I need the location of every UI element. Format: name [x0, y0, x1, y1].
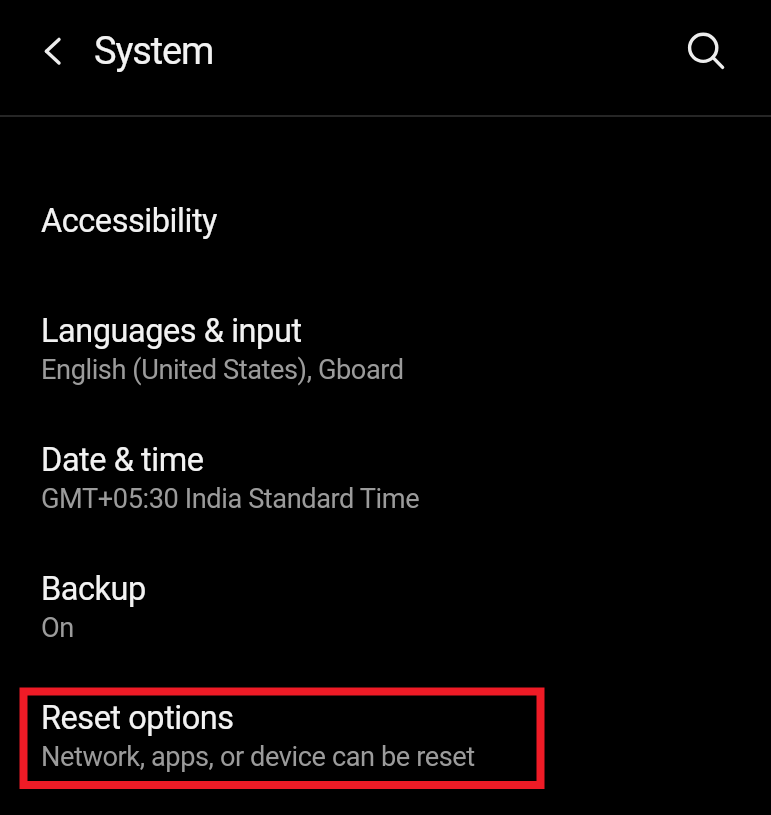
button[interactable]: Date & time	[0, 412, 771, 524]
button[interactable]: Search	[679, 24, 727, 72]
staticText: System	[94, 29, 214, 74]
staticText: English (United States), Gboard	[41, 354, 404, 386]
button[interactable]: Accessibility	[0, 163, 771, 263]
button[interactable]: Backup	[0, 541, 771, 653]
button[interactable]: Back	[28, 26, 76, 74]
staticText: Backup	[41, 570, 146, 608]
staticText: Date & time	[41, 441, 204, 479]
staticText: GMT+05:30 India Standard Time	[41, 483, 420, 515]
staticText: Reset options	[41, 699, 234, 737]
button[interactable]: Languages & input	[0, 283, 771, 395]
staticText: On	[41, 612, 74, 644]
staticText: Network, apps, or device can be reset	[41, 741, 475, 773]
staticText: Languages & input	[41, 312, 302, 350]
staticText: Accessibility	[41, 202, 218, 240]
button[interactable]: Reset options	[0, 670, 771, 782]
